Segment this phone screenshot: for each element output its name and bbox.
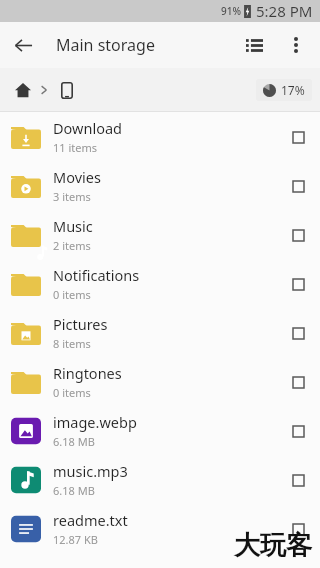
- staticText: Pictures: [53, 314, 108, 334]
- staticText: 12.87 KB: [53, 532, 98, 547]
- button[interactable]: Movies: [0, 161, 320, 210]
- staticText: 0 items: [53, 287, 91, 302]
- button[interactable]: Select image.webp: [278, 411, 318, 451]
- button[interactable]: 17%: [256, 79, 312, 101]
- button[interactable]: Select Music: [278, 215, 318, 255]
- button[interactable]: Select Pictures: [278, 313, 318, 353]
- staticText: readme.txt: [53, 510, 128, 530]
- staticText: 6.18 MB: [53, 483, 95, 498]
- button[interactable]: Download: [0, 112, 320, 161]
- staticText: Ringtones: [53, 363, 122, 383]
- button[interactable]: Ringtones: [0, 357, 320, 406]
- button[interactable]: Pictures: [0, 308, 320, 357]
- button[interactable]: Notifications: [0, 259, 320, 308]
- staticText: Download: [53, 118, 122, 138]
- button[interactable]: Select music.mp3: [278, 460, 318, 500]
- button[interactable]: readme.txt: [0, 504, 320, 553]
- staticText: Music: [53, 216, 93, 236]
- button[interactable]: Back: [0, 22, 46, 68]
- staticText: Notifications: [53, 265, 140, 285]
- button[interactable]: Select Download: [278, 117, 318, 157]
- staticText: 3 items: [53, 189, 91, 204]
- staticText: 0 items: [53, 385, 91, 400]
- staticText: image.webp: [53, 412, 137, 432]
- button[interactable]: Home: [10, 77, 36, 103]
- button[interactable]: music.mp3: [0, 455, 320, 504]
- button[interactable]: image.webp: [0, 406, 320, 455]
- button[interactable]: Music: [0, 210, 320, 259]
- staticText: 5:28 PM: [256, 1, 313, 21]
- staticText: 11 items: [53, 140, 98, 155]
- staticText: 大玩客: [234, 529, 312, 562]
- staticText: 17%: [281, 82, 305, 98]
- button[interactable]: View mode: [232, 23, 276, 67]
- staticText: Movies: [53, 167, 101, 187]
- staticText: 6.18 MB: [53, 434, 95, 449]
- button[interactable]: Select Movies: [278, 166, 318, 206]
- staticText: 8 items: [53, 336, 91, 351]
- button[interactable]: Select readme.txt: [278, 509, 318, 549]
- button[interactable]: Select Ringtones: [278, 362, 318, 402]
- staticText: music.mp3: [53, 461, 128, 481]
- button[interactable]: More options: [276, 25, 316, 65]
- staticText: Main storage: [56, 34, 232, 56]
- button[interactable]: Select Notifications: [278, 264, 318, 304]
- button[interactable]: Main storage: [54, 77, 80, 103]
- staticText: 2 items: [53, 238, 91, 253]
- staticText: 91%: [221, 4, 241, 18]
